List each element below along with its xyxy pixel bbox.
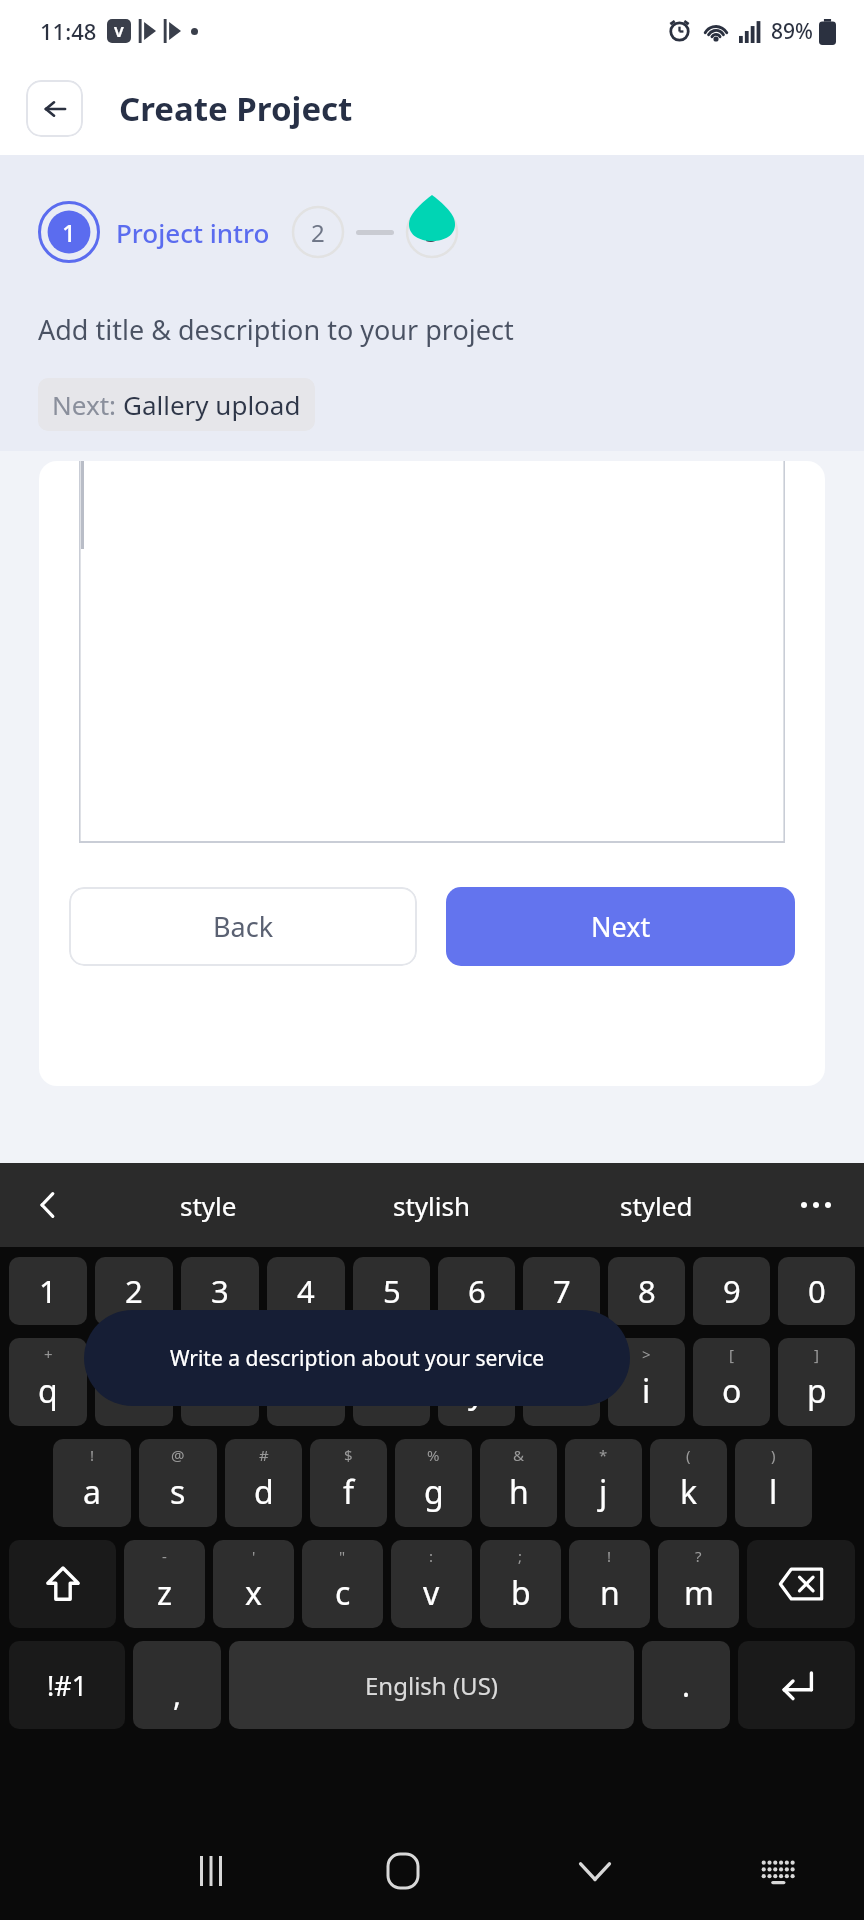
button[interactable]: * <box>565 1439 642 1527</box>
staticText: ÷ <box>216 1344 225 1364</box>
staticText: u <box>552 1369 572 1413</box>
button[interactable]: - <box>124 1540 205 1628</box>
staticText: k <box>680 1470 698 1514</box>
button[interactable]: & <box>480 1439 557 1527</box>
button[interactable]: Enter <box>738 1641 855 1729</box>
button[interactable]: Keyboard switch <box>691 1822 864 1920</box>
staticText: = <box>302 1344 311 1364</box>
button[interactable]: ] <box>778 1338 855 1426</box>
button[interactable]: 3 <box>406 206 458 258</box>
staticText: : <box>429 1546 434 1566</box>
staticText: m <box>684 1571 714 1615</box>
button[interactable]: = <box>267 1338 345 1426</box>
button[interactable]: 8 <box>608 1257 685 1325</box>
staticText: > <box>642 1344 651 1364</box>
staticText: t <box>386 1369 398 1413</box>
button[interactable]: ; <box>480 1540 561 1628</box>
button[interactable]: 0 <box>778 1257 855 1325</box>
button[interactable]: . <box>642 1641 730 1729</box>
staticText: Project intro <box>116 215 270 250</box>
button[interactable]: ' <box>213 1540 294 1628</box>
staticText: l <box>769 1470 778 1514</box>
button[interactable]: 2 <box>292 206 344 258</box>
staticText: 3 <box>425 216 439 249</box>
button[interactable]: Shift <box>9 1540 116 1628</box>
button[interactable]: 4 <box>267 1257 345 1325</box>
button[interactable]: [ <box>693 1338 770 1426</box>
button[interactable]: Hide keyboard <box>499 1822 691 1920</box>
staticText: # <box>259 1445 269 1465</box>
button[interactable] <box>79 461 785 843</box>
staticText: 8 <box>638 1270 656 1312</box>
button[interactable]: _ <box>438 1338 515 1426</box>
button[interactable]: ) <box>735 1439 812 1527</box>
staticText: Write a description about your service <box>114 1344 600 1373</box>
button[interactable]: Back <box>26 80 83 137</box>
staticText: j <box>599 1470 608 1514</box>
button[interactable]: Next <box>446 887 795 966</box>
button[interactable]: Backspace <box>747 1540 855 1628</box>
button[interactable]: ? <box>658 1540 739 1628</box>
button[interactable]: More options <box>768 1163 864 1247</box>
button[interactable]: × <box>95 1338 173 1426</box>
button[interactable]: Next: <box>38 378 315 431</box>
staticText: Next <box>591 908 651 945</box>
button[interactable]: Back <box>69 887 417 966</box>
button[interactable]: < <box>523 1338 600 1426</box>
button[interactable]: 5 <box>353 1257 430 1325</box>
button[interactable]: ! <box>53 1439 131 1527</box>
staticText: d <box>254 1470 274 1514</box>
staticText: i <box>642 1369 651 1413</box>
button[interactable]: style <box>96 1163 320 1247</box>
button[interactable]: stylish <box>320 1163 544 1247</box>
button[interactable]: > <box>608 1338 685 1426</box>
button[interactable]: 7 <box>523 1257 600 1325</box>
staticText: - <box>162 1546 167 1566</box>
staticText: V <box>114 21 124 41</box>
button[interactable]: " <box>302 1540 383 1628</box>
button[interactable]: 1 <box>9 1257 87 1325</box>
staticText: b <box>511 1571 531 1615</box>
staticText: stylish <box>393 1188 471 1223</box>
staticText: _ <box>473 1344 480 1364</box>
staticText: + <box>44 1344 53 1364</box>
button[interactable]: 1 <box>38 201 100 263</box>
button[interactable]: : <box>391 1540 472 1628</box>
button[interactable]: 6 <box>438 1257 515 1325</box>
button[interactable]: , <box>133 1641 221 1729</box>
staticText: s <box>170 1470 186 1514</box>
staticText: & <box>513 1445 524 1465</box>
staticText: " <box>339 1546 346 1566</box>
button[interactable]: !#1 <box>9 1641 125 1729</box>
staticText: x <box>245 1571 262 1615</box>
staticText: g <box>424 1470 444 1514</box>
button[interactable]: English (US) <box>229 1641 634 1729</box>
button[interactable]: % <box>395 1439 472 1527</box>
button[interactable]: ! <box>569 1540 650 1628</box>
button[interactable]: ÷ <box>181 1338 259 1426</box>
button[interactable]: Recent apps <box>115 1822 307 1920</box>
button[interactable]: ( <box>650 1439 727 1527</box>
button[interactable]: Home <box>307 1822 499 1920</box>
button[interactable]: / <box>353 1338 430 1426</box>
staticText: ) <box>771 1445 776 1465</box>
button[interactable]: 2 <box>95 1257 173 1325</box>
staticText: Create Project <box>119 86 353 131</box>
button[interactable]: 9 <box>693 1257 770 1325</box>
staticText: [ <box>729 1344 734 1364</box>
staticText: Gallery upload <box>123 387 301 422</box>
staticText: !#1 <box>47 1667 88 1704</box>
button[interactable]: styled <box>544 1163 768 1247</box>
staticText: ' <box>252 1546 256 1566</box>
button[interactable]: + <box>9 1338 87 1426</box>
button[interactable]: 3 <box>181 1257 259 1325</box>
button[interactable]: Previous suggestions <box>0 1163 96 1247</box>
staticText: q <box>38 1369 58 1413</box>
button[interactable]: $ <box>310 1439 387 1527</box>
button[interactable]: @ <box>139 1439 217 1527</box>
staticText: h <box>509 1470 529 1514</box>
button[interactable]: # <box>225 1439 302 1527</box>
staticText: % <box>427 1445 440 1465</box>
staticText: Add title & description to your project <box>38 311 514 348</box>
